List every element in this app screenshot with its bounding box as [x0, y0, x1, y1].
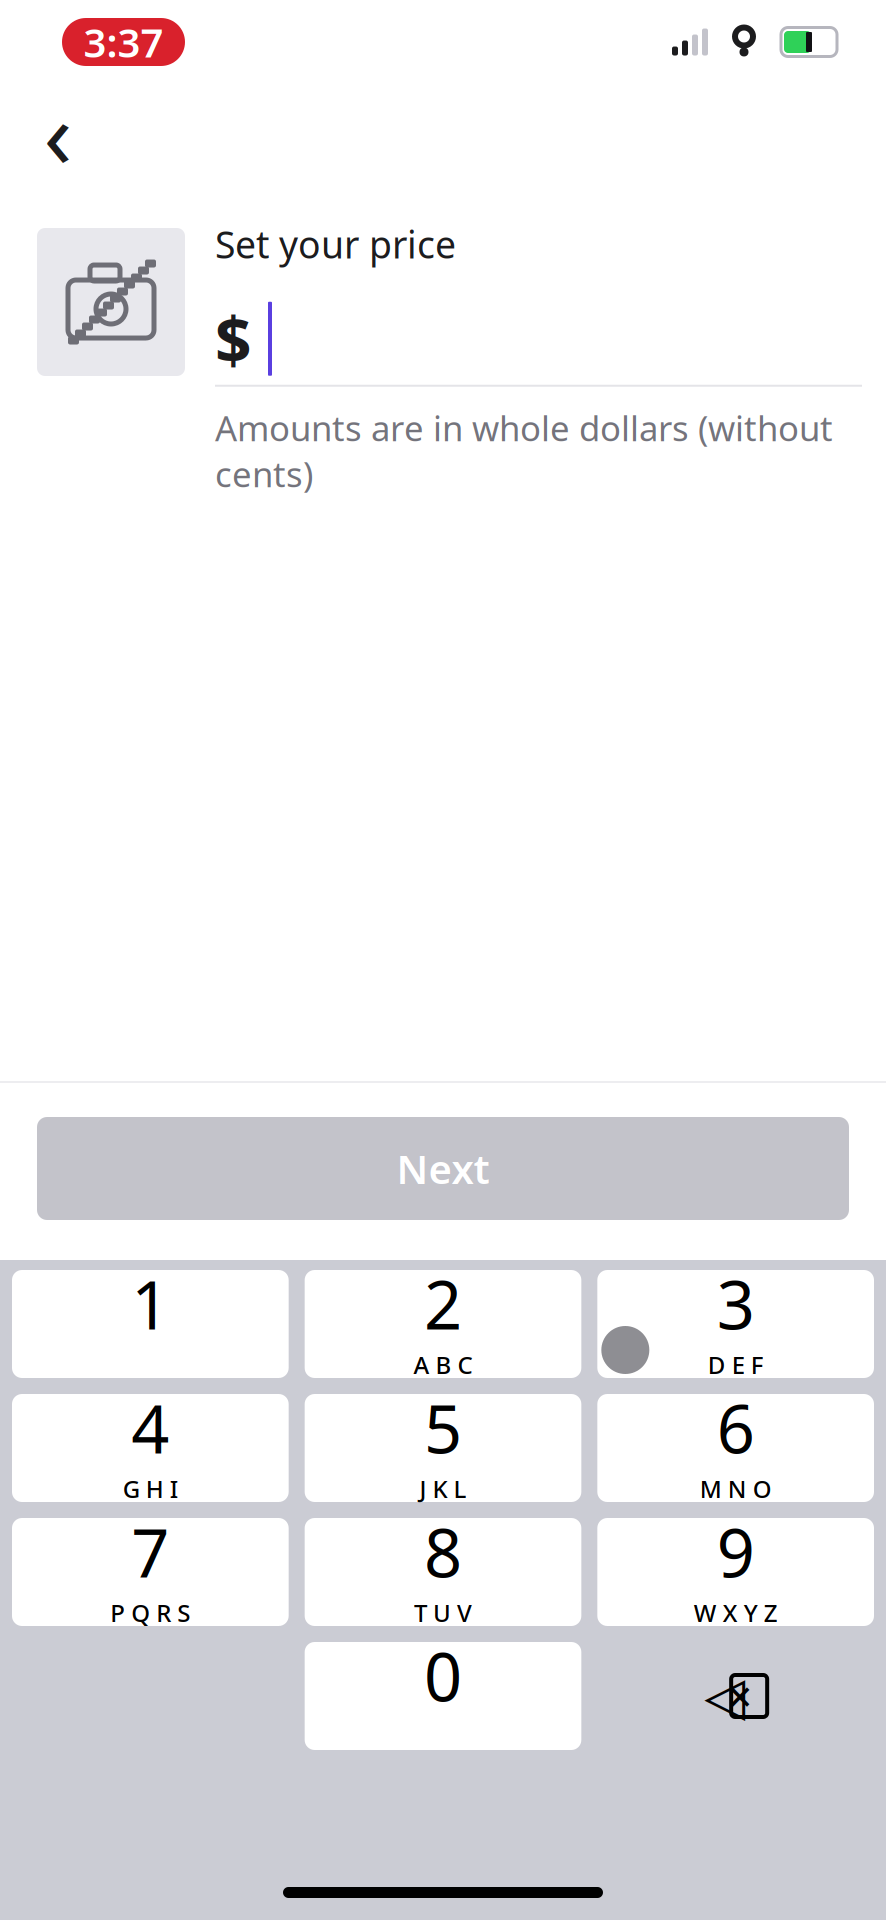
staticText: 6	[717, 1383, 755, 1472]
button[interactable]: 5	[305, 1394, 581, 1502]
staticText: 0	[424, 1631, 462, 1720]
button[interactable]: 0	[305, 1642, 581, 1750]
staticText: Amounts are in whole dollars (without ce…	[215, 405, 833, 497]
button[interactable]: 4	[12, 1394, 289, 1502]
staticText: T U V	[414, 1597, 472, 1629]
staticText: ‹	[43, 70, 72, 194]
staticText: 2	[424, 1259, 462, 1348]
button[interactable]: Back	[20, 94, 96, 170]
staticText: 3:37	[83, 15, 163, 68]
button[interactable]: 6	[597, 1394, 874, 1502]
staticText: 7	[131, 1507, 169, 1596]
staticText: J K L	[419, 1473, 466, 1505]
staticText: A B C	[413, 1349, 472, 1381]
staticText: 4	[131, 1383, 169, 1472]
staticText: ×	[728, 1668, 752, 1724]
button[interactable]: 1	[12, 1270, 289, 1378]
staticText: P Q R S	[110, 1597, 190, 1629]
button[interactable]: 7	[12, 1518, 289, 1626]
button[interactable]: Next	[37, 1117, 849, 1220]
staticText: $	[215, 296, 252, 381]
staticText: Next	[396, 1142, 489, 1195]
staticText: D E F	[708, 1349, 764, 1381]
staticText: 1	[131, 1259, 169, 1348]
button[interactable]: 3	[597, 1270, 874, 1378]
button[interactable]: 9	[597, 1518, 874, 1626]
staticText: ◁	[704, 1666, 745, 1726]
staticText: G H I	[123, 1473, 178, 1505]
staticText: 8	[424, 1507, 462, 1596]
staticText: 3	[717, 1259, 755, 1348]
staticText: W X Y Z	[694, 1597, 778, 1629]
staticText: Set your price	[215, 219, 456, 269]
button[interactable]: 2	[305, 1270, 581, 1378]
staticText: 9	[717, 1507, 755, 1596]
staticText: 5	[424, 1383, 462, 1472]
button[interactable]: Delete	[597, 1642, 874, 1750]
staticText: M N O	[700, 1473, 772, 1505]
button[interactable]: 8	[305, 1518, 581, 1626]
